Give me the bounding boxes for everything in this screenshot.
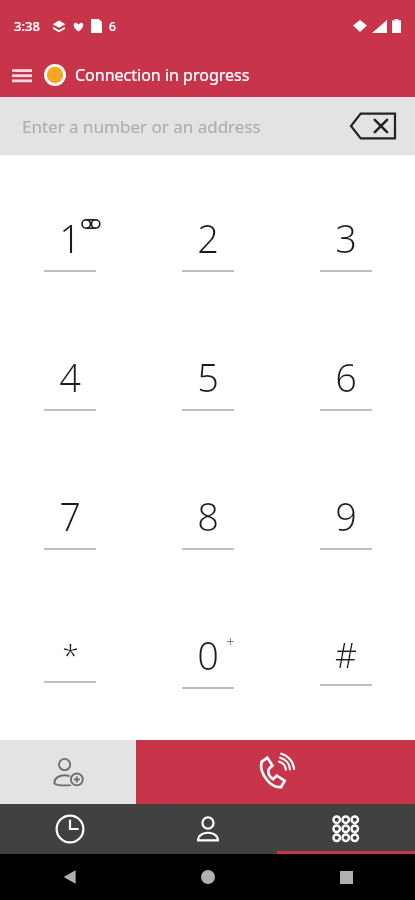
staticText: 5 bbox=[197, 351, 219, 403]
staticText: 4 bbox=[59, 351, 81, 403]
button[interactable]: 4 bbox=[0, 311, 139, 450]
button[interactable]: # bbox=[277, 589, 415, 728]
button[interactable]: * bbox=[0, 589, 139, 728]
button[interactable]: 1 bbox=[0, 173, 139, 311]
staticText: Enter a number or an address bbox=[22, 115, 261, 138]
staticText: 9 bbox=[335, 490, 357, 542]
staticText: 6 bbox=[109, 18, 116, 34]
staticText: 7 bbox=[59, 490, 81, 542]
button[interactable]: Enter a number or an address bbox=[0, 97, 415, 155]
button[interactable]: 8 bbox=[139, 450, 277, 589]
staticText: 2 bbox=[197, 212, 219, 264]
button[interactable]: Call bbox=[136, 740, 415, 804]
button[interactable]: 2 bbox=[139, 173, 277, 311]
staticText: # bbox=[335, 632, 357, 678]
button[interactable]: Add contact bbox=[0, 740, 136, 804]
staticText: * bbox=[62, 634, 79, 675]
staticText: 0 bbox=[197, 629, 219, 681]
staticText: 3:38 bbox=[14, 17, 40, 35]
button[interactable]: Keypad bbox=[277, 804, 415, 854]
staticText: 8 bbox=[197, 490, 219, 542]
button[interactable]: 6 bbox=[277, 311, 415, 450]
staticText: Connection in progress bbox=[75, 64, 250, 86]
staticText: 1 bbox=[59, 212, 81, 264]
button[interactable]: Contacts bbox=[139, 804, 277, 854]
button[interactable]: 0 bbox=[139, 589, 277, 728]
staticText: 3 bbox=[335, 212, 357, 264]
button[interactable]: Recent calls bbox=[0, 804, 139, 854]
button[interactable]: 9 bbox=[277, 450, 415, 589]
button[interactable]: Backspace bbox=[345, 98, 401, 154]
staticText: 6 bbox=[335, 351, 357, 403]
staticText: + bbox=[226, 631, 235, 651]
button[interactable]: 5 bbox=[139, 311, 277, 450]
button[interactable]: 7 bbox=[0, 450, 139, 589]
button[interactable]: 3 bbox=[277, 173, 415, 311]
button[interactable]: Menu bbox=[0, 53, 44, 97]
